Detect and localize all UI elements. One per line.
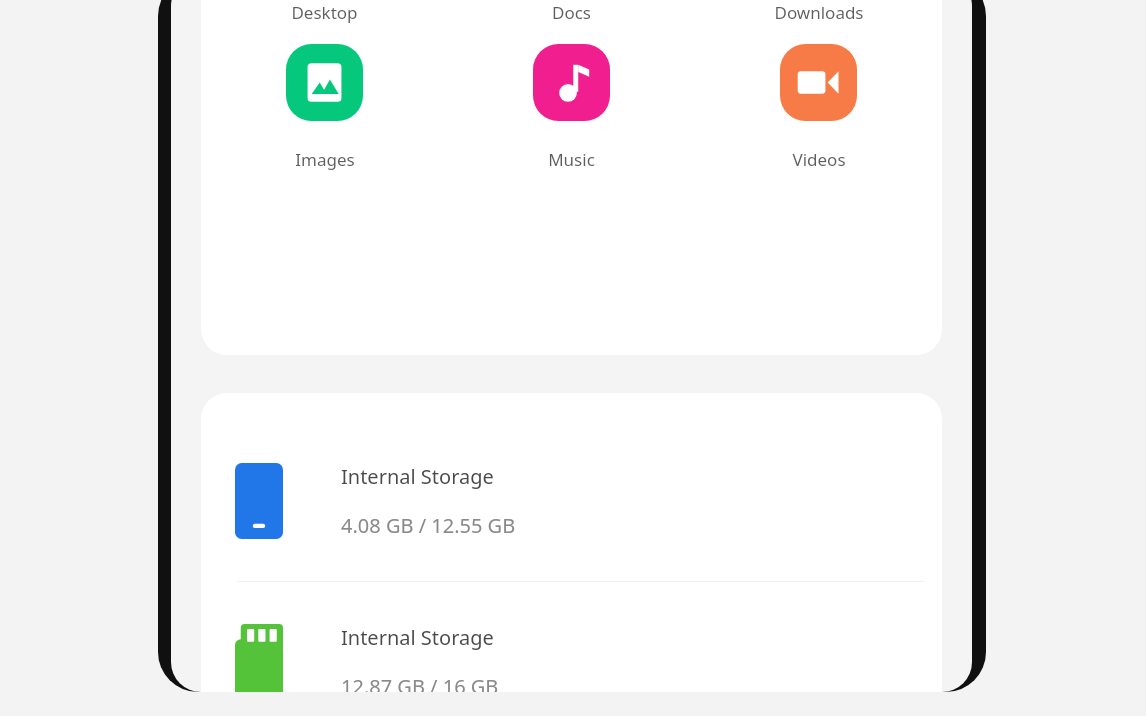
button[interactable]: Downloads xyxy=(695,0,942,32)
button[interactable]: Internal storage xyxy=(201,421,942,581)
staticText: Music xyxy=(548,148,595,171)
button[interactable]: Music xyxy=(448,44,695,171)
other: Music xyxy=(533,44,610,121)
staticText: Docs xyxy=(552,1,591,24)
staticText: Videos xyxy=(792,148,846,171)
staticText: Internal Storage xyxy=(341,624,494,651)
staticText: 12.87 GB / 16 GB xyxy=(341,673,499,692)
button[interactable]: Docs xyxy=(448,0,695,32)
other: Images xyxy=(286,44,363,121)
staticText: Desktop xyxy=(291,1,358,24)
button[interactable]: Desktop xyxy=(201,0,448,32)
staticText: Images xyxy=(295,148,355,171)
staticText: Downloads xyxy=(774,1,864,24)
staticText: Internal Storage xyxy=(341,463,494,490)
button[interactable]: Videos xyxy=(695,44,942,171)
button[interactable]: Images xyxy=(201,44,448,171)
button[interactable]: SD card storage xyxy=(201,582,942,692)
other: Internal storage xyxy=(235,463,283,539)
staticText: 4.08 GB / 12.55 GB xyxy=(341,512,516,539)
other: Videos xyxy=(780,44,857,121)
other: SD card storage xyxy=(235,624,283,692)
